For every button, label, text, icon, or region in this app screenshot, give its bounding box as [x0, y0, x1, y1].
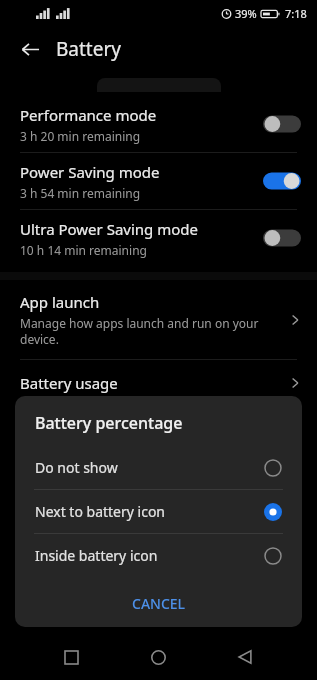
button[interactable]: Do not show [15, 446, 302, 489]
staticText: 10 h 14 min remaining [20, 242, 147, 258]
staticText: Battery percentage [35, 412, 183, 434]
staticText: Performance mode [20, 105, 157, 125]
button[interactable]: Back [12, 31, 48, 67]
button[interactable]: Next to battery icon [15, 490, 302, 533]
button[interactable]: Power Saving mode [0, 153, 317, 209]
staticText: Ultra Power Saving mode [20, 219, 198, 239]
staticText: 7:18 [285, 6, 307, 21]
staticText: Do not show [35, 458, 118, 477]
button[interactable]: App launch [0, 280, 317, 359]
button[interactable]: Performance mode [0, 96, 317, 152]
staticText: 3 h 54 min remaining [20, 185, 141, 201]
staticText: 3 h 20 min remaining [20, 128, 141, 144]
staticText: CANCEL [132, 594, 186, 613]
button[interactable]: Battery usage [0, 360, 317, 406]
staticText: 39% [235, 6, 257, 21]
staticText: Power Saving mode [20, 162, 160, 182]
button[interactable]: Home [138, 637, 178, 677]
button[interactable]: Inside battery icon [15, 534, 302, 577]
button[interactable]: Off [263, 227, 301, 249]
staticText: App launch [20, 292, 100, 312]
staticText: Next to battery icon [35, 502, 166, 521]
button[interactable]: Back [225, 637, 265, 677]
staticText: Manage how apps launch and run on your d… [20, 315, 275, 347]
button[interactable]: Off [263, 113, 301, 135]
button[interactable]: Recent apps [51, 637, 91, 677]
button[interactable]: CANCEL [120, 588, 198, 619]
button[interactable]: Ultra Power Saving mode [0, 210, 317, 266]
staticText: Inside battery icon [35, 546, 158, 565]
staticText: Battery usage [20, 373, 118, 393]
button[interactable]: On [263, 170, 301, 192]
staticText: Battery [56, 36, 121, 62]
